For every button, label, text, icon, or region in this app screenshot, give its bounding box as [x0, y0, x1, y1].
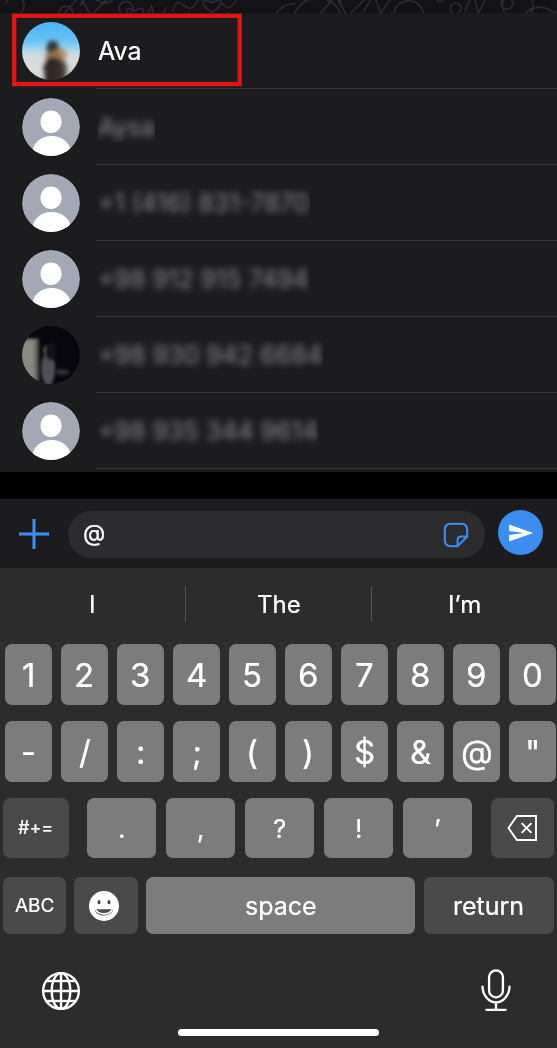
button[interactable]: Add attachment	[12, 512, 55, 555]
staticText: +98 930 942 6684	[98, 340, 323, 370]
button[interactable]: +98 912 915 7494	[0, 241, 557, 317]
button[interactable]: (	[229, 721, 276, 782]
staticText: ABC	[15, 894, 55, 917]
staticText: !	[355, 813, 363, 844]
button[interactable]: Aysa	[0, 89, 557, 165]
staticText: 4	[186, 655, 208, 695]
button[interactable]: 0	[509, 644, 556, 705]
button[interactable]: 4	[173, 644, 220, 705]
staticText: 1	[22, 655, 36, 695]
button[interactable]: +98 935 344 9614	[0, 393, 557, 469]
staticText: #+=	[18, 817, 54, 839]
staticText: 0	[522, 655, 543, 695]
button[interactable]: "	[509, 721, 556, 782]
staticText: ?	[273, 813, 287, 844]
staticText: :	[136, 732, 146, 772]
staticText: Aysa	[98, 112, 155, 142]
staticText: 2	[74, 655, 95, 695]
button[interactable]: return	[424, 877, 554, 934]
staticText: space	[245, 891, 317, 921]
button[interactable]: $	[341, 721, 388, 782]
staticText: @	[83, 519, 106, 547]
button[interactable]: ;	[173, 721, 220, 782]
staticText: 5	[242, 655, 263, 695]
button[interactable]: The	[186, 586, 371, 622]
staticText: +98 935 344 9614	[98, 416, 318, 446]
button[interactable]: .	[87, 798, 156, 858]
button[interactable]: @	[68, 511, 485, 558]
button[interactable]: 9	[453, 644, 500, 705]
staticText: "	[525, 732, 541, 772]
button[interactable]: Change keyboard language	[42, 972, 80, 1010]
button[interactable]: Emoji	[74, 877, 138, 934]
button[interactable]: I’m	[372, 586, 557, 622]
button[interactable]: ABC	[3, 877, 66, 934]
staticText: ’	[434, 813, 441, 844]
staticText: I’m	[448, 590, 482, 619]
staticText: /	[79, 732, 91, 772]
staticText: 9	[466, 655, 487, 695]
button[interactable]: ?	[245, 798, 314, 858]
button[interactable]: Send	[498, 510, 543, 555]
button[interactable]: &	[397, 721, 444, 782]
button[interactable]: 1	[5, 644, 52, 705]
button[interactable]: space	[146, 877, 415, 934]
button[interactable]: #+=	[3, 798, 69, 858]
button[interactable]: Stickers	[443, 522, 469, 548]
button[interactable]: +98 930 942 6684	[0, 317, 557, 393]
button[interactable]: !	[324, 798, 393, 858]
button[interactable]: ’	[403, 798, 472, 858]
staticText: 3	[130, 655, 151, 695]
button[interactable]: 5	[229, 644, 276, 705]
button[interactable]: 8	[397, 644, 444, 705]
button[interactable]: /	[61, 721, 108, 782]
button[interactable]: -	[5, 721, 52, 782]
staticText: 7	[355, 655, 374, 695]
staticText: Ava	[98, 36, 142, 66]
staticText: $	[354, 732, 376, 772]
staticText: +1 (416) 831-7870	[98, 188, 310, 218]
button[interactable]: Backspace	[491, 798, 554, 858]
button[interactable]: Ava	[0, 13, 557, 89]
button[interactable]: 7	[341, 644, 388, 705]
staticText: &	[410, 732, 432, 772]
button[interactable]: )	[285, 721, 332, 782]
button[interactable]: 3	[117, 644, 164, 705]
button[interactable]: Dictation	[476, 969, 516, 1009]
staticText: -	[21, 732, 37, 772]
staticText: ,	[197, 813, 205, 844]
staticText: )	[302, 732, 315, 772]
button[interactable]: 2	[61, 644, 108, 705]
staticText: I	[89, 590, 96, 619]
staticText: @	[461, 732, 493, 772]
staticText: 8	[410, 655, 431, 695]
staticText: The	[257, 590, 301, 619]
staticText: return	[453, 891, 525, 921]
staticText: (	[246, 732, 259, 772]
button[interactable]: +1 (416) 831-7870	[0, 165, 557, 241]
staticText: +98 912 915 7494	[98, 264, 309, 294]
button[interactable]: @	[453, 721, 500, 782]
staticText: .	[118, 813, 126, 844]
staticText: ;	[192, 732, 202, 772]
staticText: 6	[298, 655, 319, 695]
button[interactable]: ,	[166, 798, 235, 858]
button[interactable]: :	[117, 721, 164, 782]
button[interactable]: I	[0, 586, 185, 622]
button[interactable]: 6	[285, 644, 332, 705]
